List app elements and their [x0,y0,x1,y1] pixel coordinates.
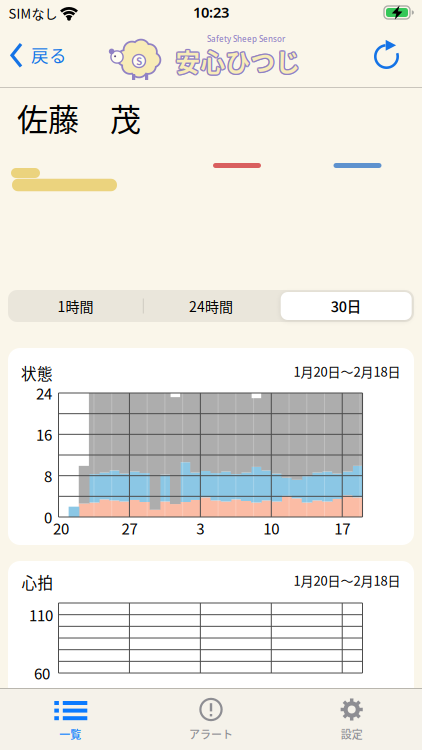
staticText: 27 [121,517,137,539]
staticText: Safety Sheep Sensor [207,34,285,44]
staticText: 安心ひつじ [177,43,302,79]
staticText: 60 [34,662,50,684]
staticText: 3 [196,517,204,539]
staticText: 16 [36,423,52,445]
staticText: 安心ひつじ [175,42,300,77]
staticText: 状態 [21,362,53,384]
button[interactable]: 1時間 [8,290,143,322]
staticText: 24時間 [189,296,233,316]
staticText: S [136,54,142,68]
button[interactable]: 一覧 [47,691,94,747]
staticText: 8 [44,465,52,486]
staticText: 安心ひつじ [176,44,301,80]
staticText: SIMなし [8,4,57,22]
staticText: 1時間 [58,296,94,316]
button[interactable]: アラート [176,691,246,747]
staticText: 心拍 [21,571,53,593]
staticText: 安心ひつじ [175,44,300,80]
staticText: 設定 [341,726,363,742]
staticText: 10 [263,517,279,539]
staticText: 1月20日〜2月18日 [293,362,400,380]
staticText: 1月20日〜2月18日 [293,571,400,589]
staticText: 戻る [31,42,67,67]
button[interactable]: 戻る [6,39,74,70]
staticText: 0 [44,506,52,528]
button[interactable]: 更新 [372,40,402,71]
staticText: 一覧 [59,726,81,742]
staticText: 24 [36,382,52,404]
staticText: 10:23 [193,2,229,22]
staticText: 安心ひつじ [175,45,300,80]
staticText: 30日 [331,295,362,316]
staticText: 110 [29,604,53,625]
button[interactable]: 24時間 [143,290,278,322]
staticText: 佐藤 茂 [17,95,141,140]
staticText: 安心ひつじ [175,43,300,79]
button[interactable]: 設定 [328,691,375,747]
staticText: 安心ひつじ [175,42,300,78]
button[interactable]: 30日 [279,290,414,322]
staticText: 安心ひつじ [176,42,301,78]
staticText: アラート [189,726,233,742]
staticText: 20 [53,517,69,539]
staticText: 17 [334,517,350,539]
staticText: 安心ひつじ [174,43,299,79]
